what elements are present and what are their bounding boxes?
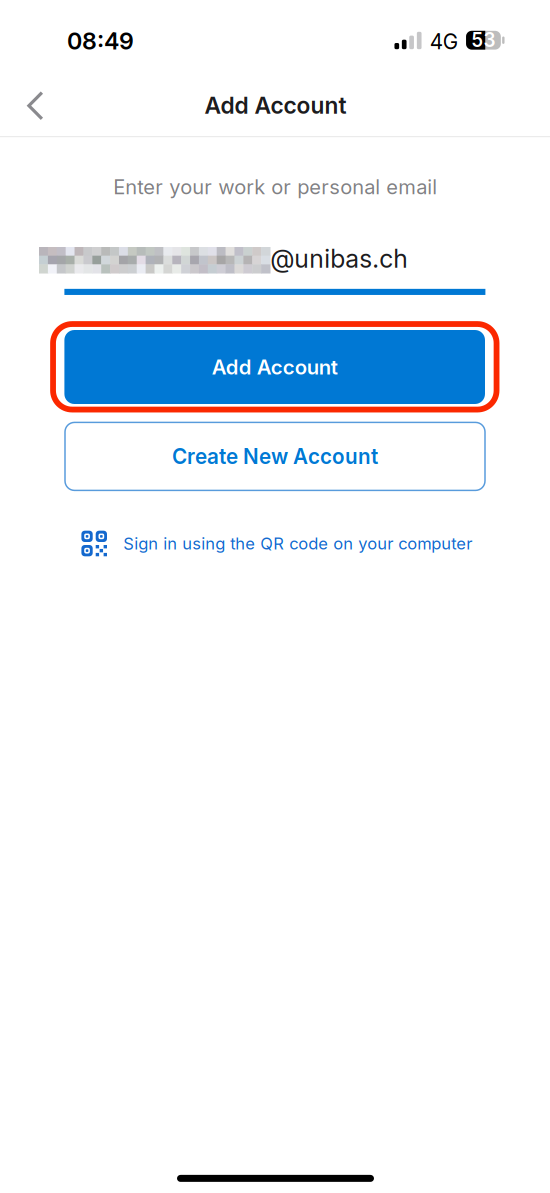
- staticText: @unibas.ch: [270, 243, 408, 274]
- staticText: Add Account: [212, 355, 338, 379]
- staticText: Create New Account: [172, 444, 378, 469]
- staticText: Enter your work or personal email: [113, 175, 437, 199]
- button[interactable]: Add Account: [64, 330, 485, 404]
- staticText: 4G: [430, 29, 458, 54]
- button[interactable]: Create New Account: [65, 422, 485, 490]
- staticText: Add Account: [204, 92, 346, 119]
- staticText: Sign in using the QR code on your comput…: [123, 533, 472, 553]
- staticText: 08:49: [67, 27, 134, 55]
- staticText: 53: [471, 29, 495, 52]
- button[interactable]: Back: [12, 83, 58, 129]
- button[interactable]: Sign in using the QR code on your comput…: [81, 529, 491, 557]
